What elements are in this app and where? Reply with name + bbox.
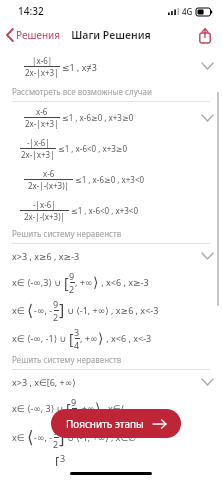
staticText: , +∞	[77, 402, 95, 414]
staticText: [	[66, 399, 71, 418]
staticText: ≤1 , x-6≥0 , x+3≥0	[62, 112, 134, 123]
staticText: 9	[71, 396, 77, 408]
staticText: Решить систему неравенств	[12, 354, 122, 365]
staticText: x∈	[12, 431, 27, 443]
staticText: ≤1 , x-6<0 , x+3≥0	[58, 143, 128, 154]
staticText: x∈ ⟨-∞, -1⟩ ∪	[12, 332, 69, 344]
staticText: Пояснить этапы	[66, 417, 144, 431]
button[interactable]: Пояснить этапы	[51, 409, 181, 438]
staticText: ∪ ⟨-1, +∞⟩ , x≥6 , x<-3	[65, 304, 159, 316]
staticText: [	[64, 273, 69, 292]
staticText: x-6	[36, 106, 48, 117]
staticText: 9	[53, 425, 59, 437]
staticText: ⟨	[27, 301, 34, 320]
staticText: , +∞	[80, 332, 98, 344]
staticText: Рассмотреть все возможные случаи	[12, 86, 152, 97]
staticText: ≤1 , x≠3	[62, 61, 97, 73]
staticText: ]	[59, 426, 65, 449]
staticText: ≤1 , x-6≥0 , x+3<0	[75, 174, 145, 185]
button[interactable]: Expand	[196, 247, 218, 265]
staticText: , x∈⟨	[101, 402, 125, 414]
staticText: 9	[53, 298, 59, 310]
button[interactable]: Решения	[5, 28, 61, 42]
staticText: ⟩	[98, 330, 104, 346]
staticText: 9	[69, 270, 75, 282]
staticText: 2x-|x+3|	[25, 118, 59, 129]
staticText: -∞, -	[34, 304, 53, 316]
staticText: |x-6|	[32, 55, 53, 66]
staticText: -∞, -	[34, 431, 53, 443]
button[interactable]: Share	[196, 26, 214, 44]
staticText: x∈	[12, 304, 27, 316]
staticText: 4G	[182, 6, 193, 17]
staticText: 2	[53, 438, 59, 450]
staticText: ⟩	[93, 274, 99, 290]
staticText: [	[69, 329, 74, 348]
staticText: , x<6 , x<-3	[104, 332, 152, 344]
staticText: -|x-6|	[33, 199, 56, 210]
staticText: x∈ ⟨-∞, 3⟩ ∪	[12, 402, 66, 414]
staticText: x∈ ⟨-∞,3⟩ ∪	[12, 276, 64, 288]
staticText: x>3 , x∈[6, +∞⟩	[12, 376, 76, 388]
staticText: Решения	[16, 28, 61, 42]
staticText: 3	[74, 326, 80, 338]
staticText: 2	[69, 283, 75, 295]
staticText: 14:32	[18, 4, 44, 18]
staticText: ≤1 , x-6<0 , x+3<0	[71, 205, 138, 216]
staticText: -|x-6|	[27, 137, 50, 148]
button[interactable]: Expand	[196, 109, 218, 127]
staticText: ∪ ⟨-1, +∞⟩ , x∈∅	[65, 431, 137, 443]
staticText: [	[55, 452, 60, 466]
staticText: 2x-|-(x+3)|	[24, 211, 65, 222]
staticText: ⟩	[95, 400, 101, 416]
staticText: ⟨	[27, 427, 34, 447]
staticText: x>3 , x≥6 , x≥-3	[12, 250, 80, 262]
button[interactable]: Expand	[196, 57, 218, 75]
staticText: 2x-|-(x+3)|	[28, 180, 69, 191]
staticText: 2x-|x+3|	[21, 149, 55, 160]
staticText: , +∞	[75, 276, 93, 288]
button[interactable]: Expand	[196, 373, 218, 391]
staticText: Шаги Решения	[71, 28, 151, 42]
staticText: 3	[60, 452, 66, 464]
staticText: 2x-|x+3|	[25, 67, 59, 78]
staticText: x-6	[43, 168, 55, 179]
staticText: 4	[74, 339, 80, 351]
staticText: 2	[53, 311, 59, 323]
staticText: Решить систему неравенств	[12, 228, 122, 239]
staticText: 2	[71, 409, 77, 421]
staticText: ]	[59, 299, 65, 321]
staticText: , x<6 , x≥-3	[99, 276, 149, 288]
